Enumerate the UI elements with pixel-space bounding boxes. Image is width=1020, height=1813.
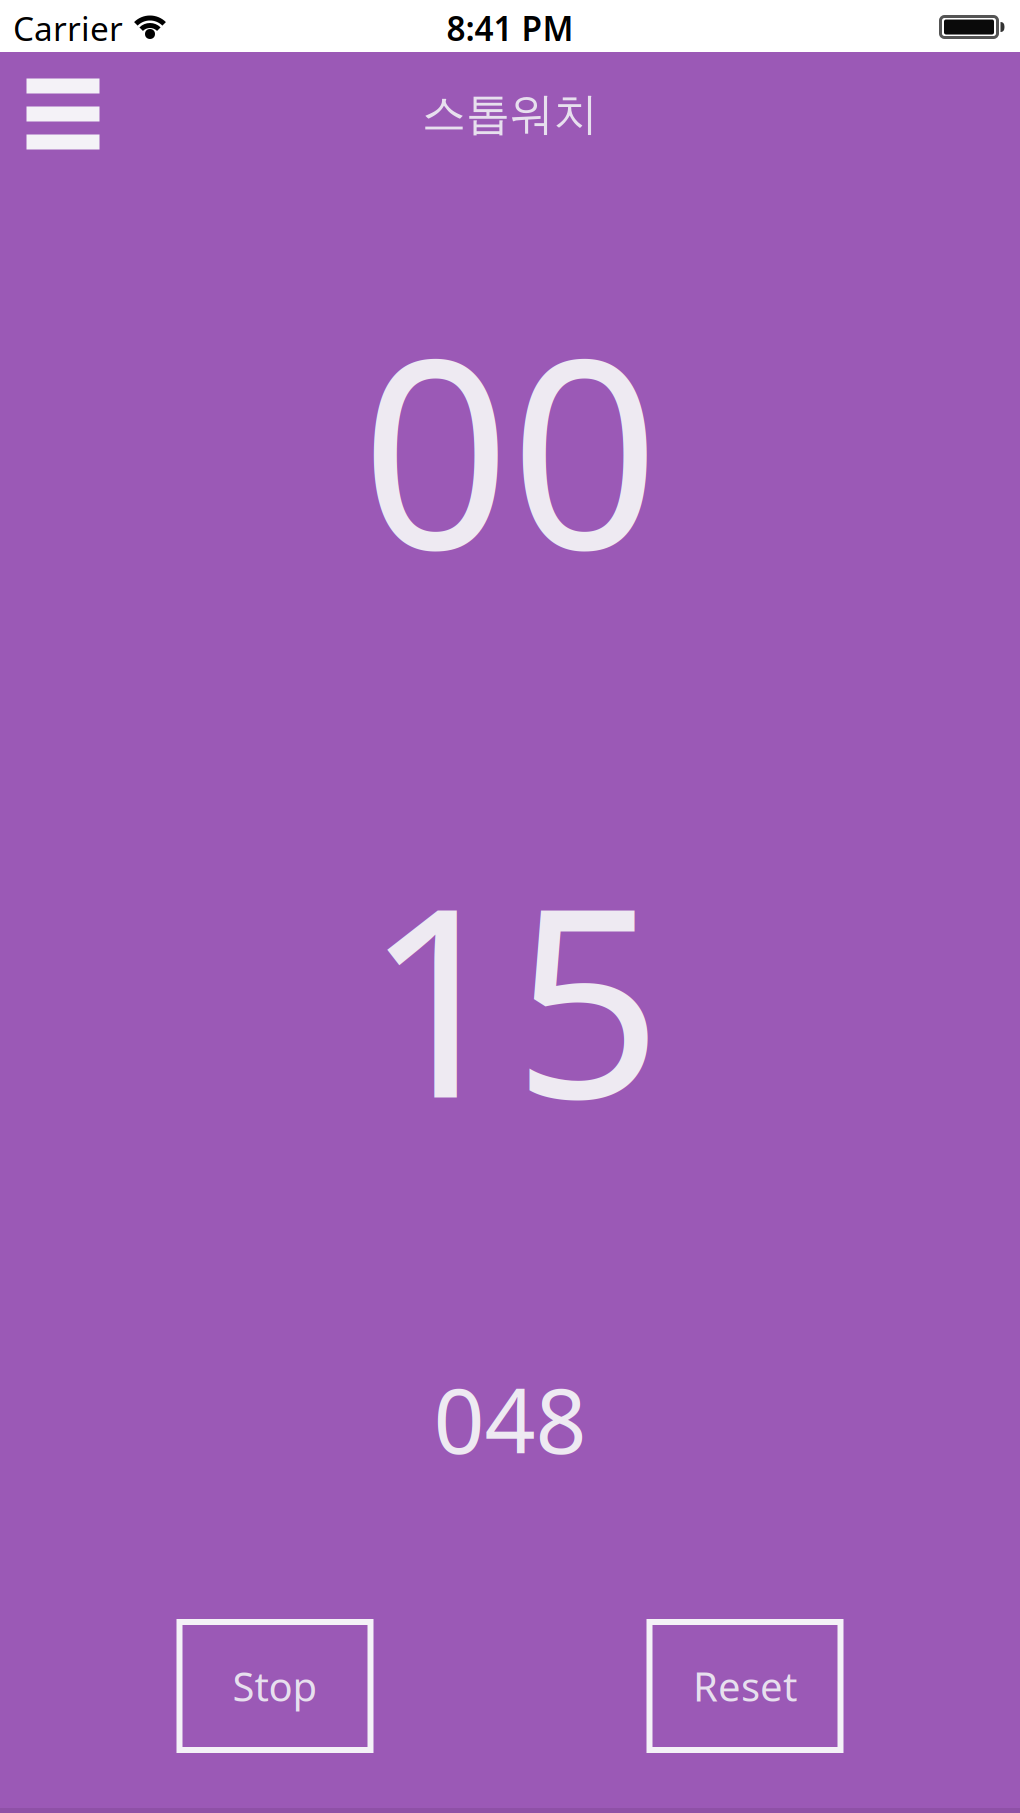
staticText: 15: [364, 822, 662, 1169]
staticText: 8:41 PM: [446, 6, 573, 50]
staticText: Reset: [693, 1659, 797, 1712]
staticText: Stop: [232, 1659, 317, 1712]
staticText: Carrier: [13, 6, 123, 50]
button[interactable]: Reset: [649, 1622, 840, 1750]
button[interactable]: [26, 78, 99, 149]
staticText: 스톱워치: [422, 87, 598, 141]
staticText: 00: [361, 273, 659, 620]
button[interactable]: Stop: [179, 1622, 370, 1750]
staticText: 048: [433, 1360, 586, 1478]
